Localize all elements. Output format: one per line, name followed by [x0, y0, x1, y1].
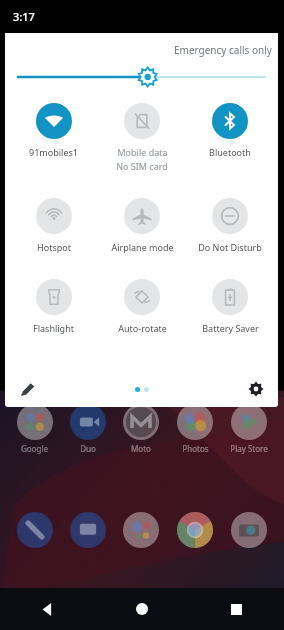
staticText: Airplane mode	[111, 241, 174, 253]
button[interactable]: Battery Saver	[186, 279, 274, 334]
button[interactable]: Flashlight	[9, 279, 98, 334]
button[interactable]: Home	[94, 588, 189, 630]
button[interactable]: Mobile data	[98, 103, 186, 172]
button[interactable]: Back	[0, 588, 94, 630]
staticText: Mobile data	[117, 146, 168, 158]
button[interactable]: Photos	[168, 404, 222, 454]
staticText: Emergency calls only	[174, 43, 272, 57]
staticText: Moto	[131, 443, 151, 454]
staticText: Duo	[80, 443, 96, 454]
button[interactable]: 91mobiles1	[9, 103, 98, 158]
staticText: Flashlight	[33, 322, 74, 334]
staticText: 3:17	[13, 9, 35, 24]
button[interactable]: Assistant	[114, 512, 168, 548]
staticText: 91mobiles1	[29, 146, 78, 158]
button[interactable]: Play Store	[222, 404, 276, 454]
button[interactable]: Duo	[61, 404, 114, 454]
staticText: Bluetooth	[209, 146, 251, 158]
button[interactable]: Brightness	[18, 66, 265, 88]
button[interactable]: Messages	[61, 512, 114, 548]
staticText: Do Not Disturb	[198, 241, 262, 253]
staticText: Google	[21, 443, 48, 454]
button[interactable]: Settings	[242, 375, 270, 403]
button[interactable]: Airplane mode	[98, 198, 186, 253]
button[interactable]: Phone	[8, 512, 61, 548]
button[interactable]: Google	[8, 404, 61, 454]
button[interactable]: Chrome	[168, 512, 222, 548]
staticText: Battery Saver	[202, 322, 259, 334]
button[interactable]: Moto	[114, 404, 168, 454]
button[interactable]: Bluetooth	[186, 103, 274, 158]
staticText: Hotspot	[37, 241, 71, 253]
button[interactable]: Auto-rotate	[98, 279, 186, 334]
staticText: Play Store	[230, 443, 268, 454]
button[interactable]: Do Not Disturb	[186, 198, 274, 253]
staticText: Auto-rotate	[118, 322, 167, 334]
button[interactable]: Camera	[222, 512, 276, 548]
button[interactable]: Recents	[189, 588, 284, 630]
staticText: Photos	[182, 443, 209, 454]
button[interactable]: Edit tiles	[13, 375, 41, 403]
staticText: No SIM card	[116, 160, 168, 172]
button[interactable]: Hotspot	[9, 198, 98, 253]
